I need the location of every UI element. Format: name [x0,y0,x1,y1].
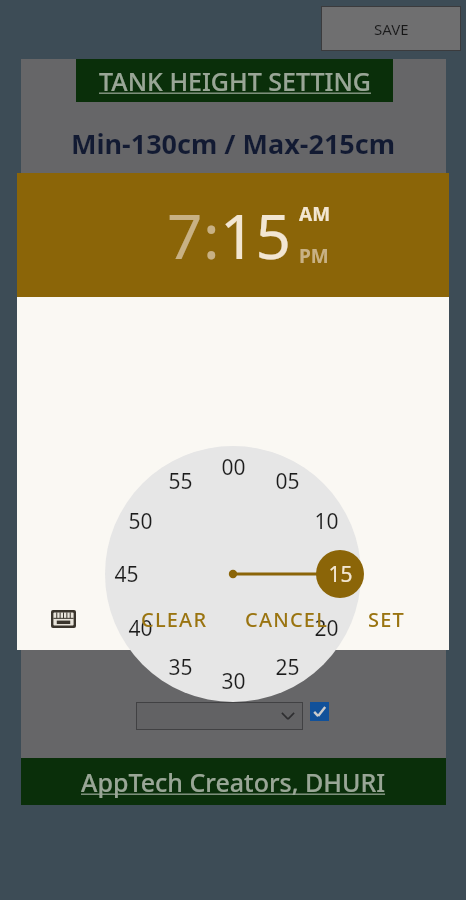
button[interactable]: 15 [220,193,291,277]
button[interactable]: 50 [116,505,164,537]
staticText: 35 [168,653,193,682]
staticText: AppTech Creators, DHURI [81,765,386,799]
staticText: : [203,193,220,277]
button[interactable]: SAVE [321,6,461,51]
button[interactable]: 30 [209,665,257,697]
button[interactable]: AppTech Creators, DHURI [21,758,446,805]
staticText: CANCEL [245,606,329,633]
staticText: 10 [314,507,339,536]
staticText: 50 [128,507,153,536]
button[interactable]: 00 [209,451,257,483]
staticText: 15 [328,560,353,589]
button[interactable]: 45 [102,558,150,590]
button[interactable]: SET [368,599,405,639]
button[interactable]: CLEAR [141,599,208,639]
staticText: 25 [275,653,300,682]
button[interactable] [136,702,303,730]
button[interactable]: 15 [316,558,364,590]
staticText: Min-130cm / Max-215cm [71,125,396,162]
staticText: 05 [275,467,300,496]
button[interactable]: 40 [116,612,164,644]
button[interactable]: 05 [263,465,311,497]
staticText: 55 [168,467,193,496]
staticText: TANK HEIGHT SETTING [99,64,371,98]
button[interactable]: CANCEL [245,599,329,639]
button[interactable]: TANK HEIGHT SETTING [76,59,393,102]
button[interactable]: Enable timer [310,702,329,721]
button[interactable]: 35 [156,651,204,683]
staticText: 40 [128,614,153,643]
button[interactable]: 7 [167,193,203,277]
staticText: SAVE [374,19,409,39]
staticText: CLEAR [141,606,208,633]
button[interactable]: Switch to text input [48,607,78,631]
staticText: Timer 2 [181,637,286,675]
button[interactable]: 55 [156,465,204,497]
button[interactable]: 25 [263,651,311,683]
staticText: SET [368,606,405,633]
staticText: 45 [114,560,139,589]
staticText: 20 [314,614,339,643]
staticText: 30 [221,667,246,696]
button[interactable]: 10 [302,505,350,537]
staticText: 00 [221,453,246,482]
button[interactable]: 20 [302,612,350,644]
button[interactable]: AM [299,201,331,227]
button[interactable]: PM [299,243,329,269]
